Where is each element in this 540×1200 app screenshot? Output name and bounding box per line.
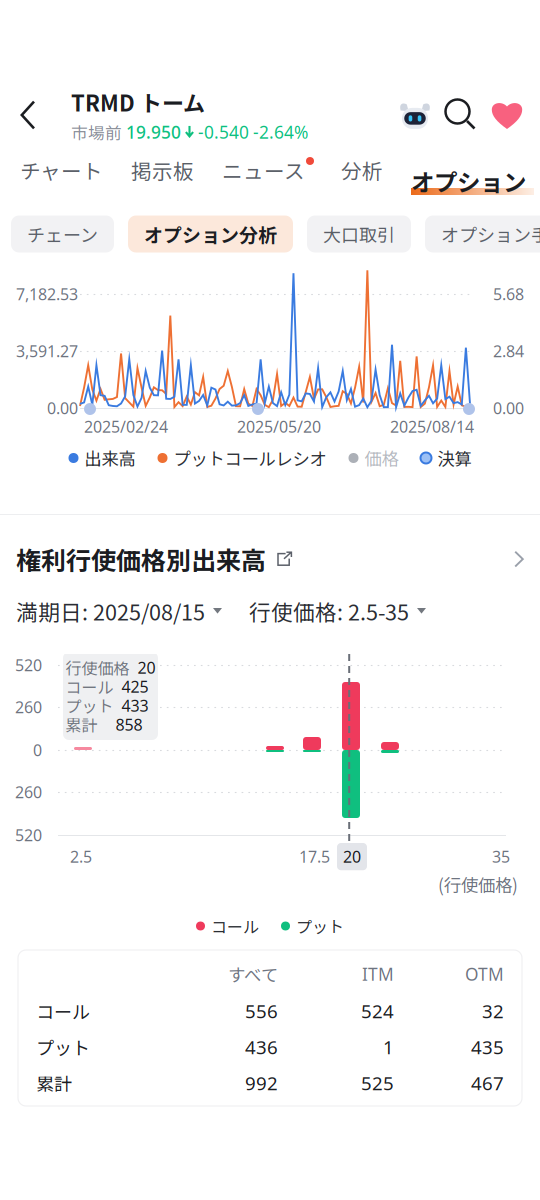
staticText: 433 bbox=[121, 695, 148, 716]
staticText: 0.00 bbox=[493, 397, 524, 419]
button[interactable]: AI assistant bbox=[392, 91, 438, 139]
staticText: 260 bbox=[15, 696, 42, 718]
staticText: 32 bbox=[482, 999, 504, 1023]
button[interactable]: オプション bbox=[397, 146, 540, 202]
staticText: 出来高 bbox=[84, 445, 135, 471]
button[interactable]: オプション分析 bbox=[128, 215, 293, 252]
staticText: -2.64% bbox=[253, 120, 308, 143]
staticText: 2025/02/24 bbox=[84, 416, 168, 437]
button[interactable]: ニュース bbox=[208, 146, 327, 202]
staticText: 権利行使価格別出来高 bbox=[16, 541, 266, 577]
button[interactable]: チャート bbox=[6, 146, 117, 202]
button[interactable]: Watchlist bbox=[484, 91, 530, 139]
staticText: 0.00 bbox=[47, 397, 78, 419]
staticText: チェーン bbox=[27, 221, 98, 247]
staticText: コール bbox=[65, 675, 113, 698]
staticText: 5.68 bbox=[493, 283, 524, 305]
staticText: オプション分析 bbox=[144, 220, 277, 248]
staticText: コール bbox=[211, 914, 259, 938]
staticText: 20 bbox=[137, 657, 155, 678]
staticText: 行使価格 bbox=[65, 656, 129, 679]
staticText: -0.540 bbox=[198, 120, 249, 143]
staticText: 35 bbox=[492, 846, 510, 867]
button[interactable]: 価格 bbox=[348, 445, 398, 471]
staticText: TRMD トーム bbox=[71, 86, 205, 118]
button[interactable]: オプション手 bbox=[425, 215, 540, 252]
button[interactable]: 大口取引 bbox=[307, 215, 411, 252]
staticText: チャート bbox=[20, 155, 103, 185]
button[interactable]: More bbox=[514, 550, 524, 567]
staticText: 市場前 bbox=[71, 120, 122, 144]
staticText: 858 bbox=[115, 714, 142, 735]
staticText: 3,591.27 bbox=[16, 340, 78, 362]
staticText: ITM bbox=[362, 962, 394, 985]
staticText: 992 bbox=[245, 1071, 278, 1095]
button[interactable]: 満期日: 2025/08/15 bbox=[16, 595, 222, 627]
button[interactable]: 決算 bbox=[420, 445, 471, 471]
staticText: (行使価格) bbox=[438, 872, 518, 897]
staticText: 掲示板 bbox=[131, 155, 194, 185]
staticText: 525 bbox=[361, 1071, 394, 1095]
staticText: 0 bbox=[33, 739, 42, 761]
staticText: プット bbox=[36, 1034, 90, 1060]
button[interactable]: 出来高 bbox=[68, 445, 135, 471]
button[interactable]: Back bbox=[2, 84, 54, 146]
staticText: OTM bbox=[465, 962, 504, 985]
staticText: プット bbox=[296, 914, 344, 938]
staticText: 524 bbox=[361, 999, 394, 1023]
staticText: 累計 bbox=[65, 713, 97, 736]
staticText: 520 bbox=[15, 824, 42, 846]
staticText: オプション bbox=[411, 164, 526, 198]
staticText: 累計 bbox=[36, 1070, 72, 1096]
button[interactable]: 掲示板 bbox=[117, 146, 208, 202]
staticText: 大口取引 bbox=[323, 221, 395, 247]
staticText: 分析 bbox=[341, 155, 383, 185]
staticText: オプション手 bbox=[441, 221, 540, 247]
button[interactable]: プットコールレシオ bbox=[157, 445, 326, 471]
button[interactable]: Search bbox=[438, 91, 484, 139]
staticText: 決算 bbox=[437, 445, 471, 471]
staticText: 行使価格: 2.5-35 bbox=[249, 595, 409, 627]
staticText: 2025/08/14 bbox=[390, 416, 474, 437]
staticText: 260 bbox=[15, 781, 42, 803]
staticText: 19.950 bbox=[126, 120, 181, 143]
staticText: 425 bbox=[121, 676, 148, 697]
staticText: プットコールレシオ bbox=[173, 445, 326, 471]
button[interactable]: Share bbox=[277, 551, 293, 567]
staticText: ニュース bbox=[222, 155, 305, 185]
staticText: 2.5 bbox=[70, 846, 92, 867]
staticText: 520 bbox=[15, 654, 42, 676]
staticText: 7,182.53 bbox=[16, 283, 78, 305]
button[interactable]: 分析 bbox=[327, 146, 397, 202]
staticText: 435 bbox=[471, 1035, 504, 1059]
staticText: 2025/05/20 bbox=[237, 416, 321, 437]
button[interactable]: 行使価格: 2.5-35 bbox=[249, 595, 426, 627]
staticText: すべて bbox=[228, 961, 278, 987]
staticText: 満期日: 2025/08/15 bbox=[16, 595, 205, 627]
staticText: 17.5 bbox=[299, 846, 330, 867]
staticText: 1 bbox=[383, 1035, 394, 1059]
staticText: 436 bbox=[245, 1035, 278, 1059]
staticText: 467 bbox=[471, 1071, 504, 1095]
staticText: プット bbox=[65, 694, 113, 717]
staticText: コール bbox=[36, 998, 90, 1024]
staticText: 20 bbox=[343, 846, 361, 867]
staticText: 価格 bbox=[364, 445, 398, 471]
staticText: 2.84 bbox=[493, 340, 524, 362]
staticText: 556 bbox=[245, 999, 278, 1023]
button[interactable]: チェーン bbox=[11, 215, 114, 252]
